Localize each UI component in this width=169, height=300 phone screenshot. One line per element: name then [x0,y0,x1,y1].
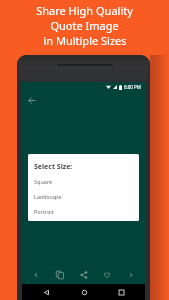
staticText: 6:00 PM [124,84,141,90]
staticText: Portrait [34,208,54,215]
button[interactable]: Previous [26,266,46,284]
button[interactable]: Next [121,266,141,284]
staticText: Landscape [34,193,62,200]
button[interactable]: Portrait [34,208,133,215]
staticText: Select Size: [34,162,73,172]
staticText: Quote Image [50,18,119,33]
button[interactable]: Share [74,266,94,284]
staticText: Share High Quality [36,3,133,18]
button[interactable]: Favorite [97,266,117,284]
button[interactable]: Back [40,286,52,298]
staticText: in Multiple Sizes [43,33,127,48]
button[interactable]: Landscape [34,193,133,200]
button[interactable]: Recents [115,286,127,298]
button[interactable]: Copy [50,266,70,284]
staticText: Square [34,178,53,185]
button[interactable]: Back [22,91,40,109]
button[interactable]: Square [34,178,133,185]
button[interactable]: Home [78,286,90,298]
